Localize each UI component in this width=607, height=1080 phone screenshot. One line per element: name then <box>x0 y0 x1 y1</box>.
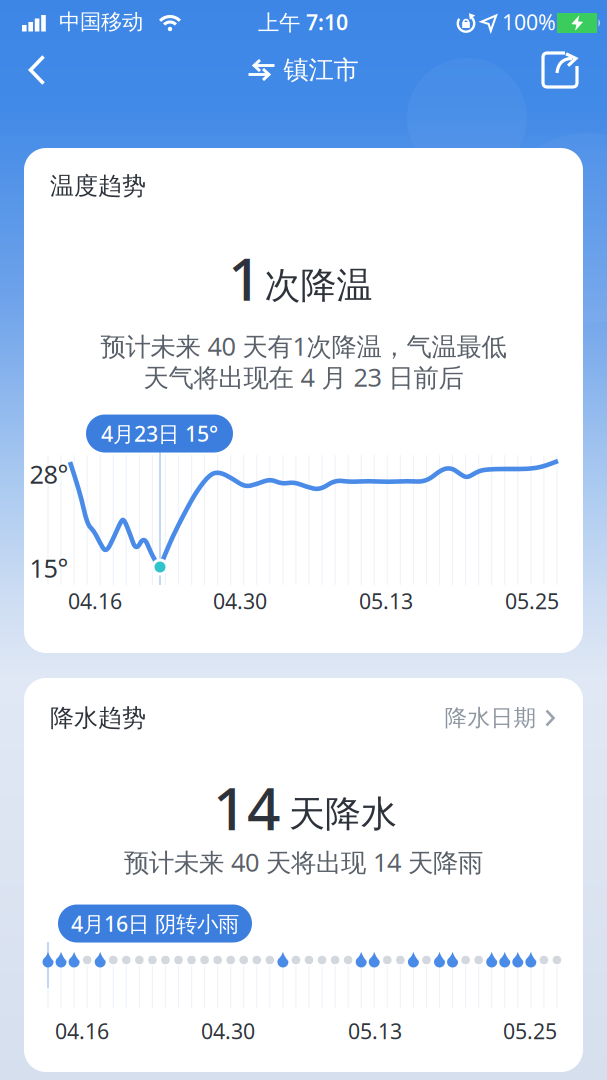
staticText: 15° <box>29 551 68 585</box>
staticText: 天气将出现在 4 月 23 日前后 <box>143 360 463 394</box>
staticText: 温度趋势 <box>50 171 146 201</box>
staticText: 100% <box>502 8 556 36</box>
button[interactable]: 切换城市 <box>247 54 358 85</box>
staticText: 04.16 <box>68 587 122 615</box>
staticText: 镇江市 <box>283 54 358 85</box>
staticText: 预计未来 40 天将出现 14 天降雨 <box>124 845 483 879</box>
staticText: 4月23日 15° <box>101 419 218 448</box>
staticText: 05.25 <box>505 587 559 615</box>
staticText: 05.13 <box>348 1017 402 1045</box>
staticText: 次降温 <box>264 263 372 308</box>
staticText: 降水趋势 <box>50 703 146 733</box>
staticText: 1 <box>228 239 262 317</box>
staticText: 降水日期 <box>444 704 536 732</box>
staticText: 预计未来 40 天有1次降温，气温最低 <box>100 329 506 363</box>
staticText: 14 <box>213 768 281 846</box>
staticText: 上午 7:10 <box>258 8 348 36</box>
staticText: 4月16日 阴转小雨 <box>71 909 239 938</box>
staticText: 中国移动 <box>59 9 143 35</box>
button[interactable]: 返回 <box>14 44 60 95</box>
button[interactable]: 分享 <box>531 43 589 97</box>
staticText: 05.13 <box>359 587 413 615</box>
staticText: 天降水 <box>289 792 397 836</box>
staticText: 04.30 <box>213 587 267 615</box>
staticText: 05.25 <box>503 1017 557 1045</box>
staticText: 04.16 <box>55 1017 109 1045</box>
staticText: 28° <box>29 457 68 491</box>
button[interactable]: 降水日期 <box>444 704 555 732</box>
staticText: 04.30 <box>201 1017 255 1045</box>
